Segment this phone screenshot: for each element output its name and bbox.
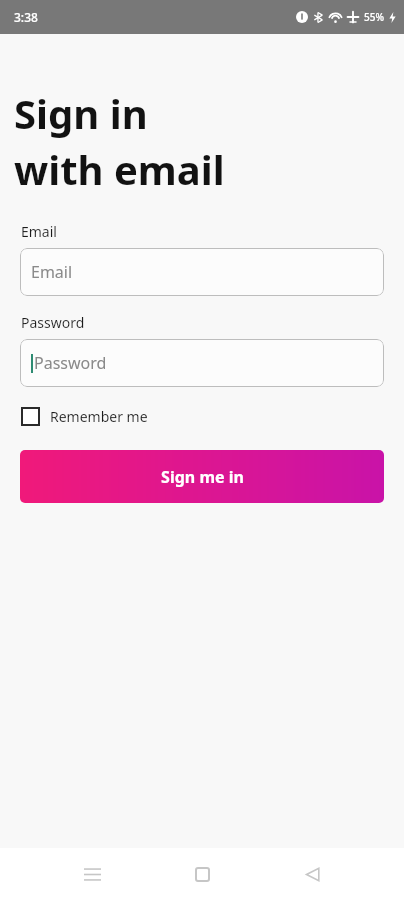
button[interactable]: Sign me in: [20, 450, 384, 503]
button[interactable]: Recent apps: [70, 852, 114, 896]
staticText: Password: [34, 352, 107, 374]
staticText: Email: [31, 261, 73, 283]
staticText: Remember me: [50, 407, 148, 426]
staticText: Sign in: [14, 86, 148, 140]
staticText: Sign me in: [161, 466, 244, 488]
button[interactable]: Email: [20, 248, 384, 296]
button[interactable]: Remember me: [20, 401, 156, 431]
staticText: with email: [14, 142, 225, 196]
staticText: Password: [21, 313, 85, 332]
staticText: 3:38: [14, 9, 38, 25]
button[interactable]: Password: [20, 339, 384, 387]
button[interactable]: Back: [290, 852, 334, 896]
staticText: Email: [21, 222, 57, 241]
button[interactable]: Home: [180, 852, 224, 896]
staticText: 55%: [364, 10, 384, 24]
